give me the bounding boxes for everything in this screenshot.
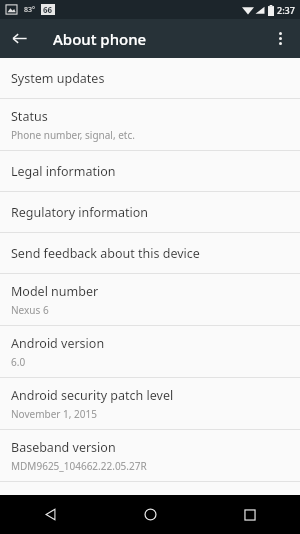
staticText: Legal information — [11, 163, 116, 180]
button[interactable]: Android security patch level — [0, 378, 300, 429]
staticText: System updates — [11, 70, 105, 87]
staticText: Send feedback about this device — [11, 245, 200, 262]
button[interactable]: Recent apps — [200, 495, 300, 534]
staticText: Android version — [11, 335, 105, 352]
button[interactable]: Regulatory information — [0, 192, 300, 232]
staticText: November 1, 2015 — [11, 407, 97, 421]
staticText: 6.0 — [11, 355, 26, 369]
staticText: About phone — [53, 29, 147, 49]
staticText: 2:37 — [277, 4, 295, 16]
staticText: 83° — [24, 5, 35, 15]
staticText: Regulatory information — [11, 204, 149, 221]
staticText: MDM9625_104662.22.05.27R — [11, 459, 147, 473]
button[interactable]: Model number — [0, 274, 300, 325]
button[interactable]: Legal information — [0, 151, 300, 191]
button[interactable]: Android version — [0, 326, 300, 377]
staticText: 66 — [43, 4, 53, 15]
button[interactable]: Baseband version — [0, 430, 300, 481]
staticText: Model number — [11, 283, 99, 300]
button[interactable]: Status — [0, 99, 300, 150]
staticText: Nexus 6 — [11, 303, 49, 317]
staticText: Status — [11, 108, 48, 125]
button[interactable]: Home — [100, 495, 200, 534]
button[interactable]: Send feedback about this device — [0, 233, 300, 273]
button[interactable]: System updates — [0, 58, 300, 98]
staticText: Baseband version — [11, 439, 116, 456]
button[interactable]: Back — [0, 495, 100, 534]
staticText: Android security patch level — [11, 387, 174, 404]
staticText: Phone number, signal, etc. — [11, 128, 135, 142]
button[interactable]: More options — [261, 19, 300, 58]
button[interactable]: Navigate up — [0, 19, 39, 58]
